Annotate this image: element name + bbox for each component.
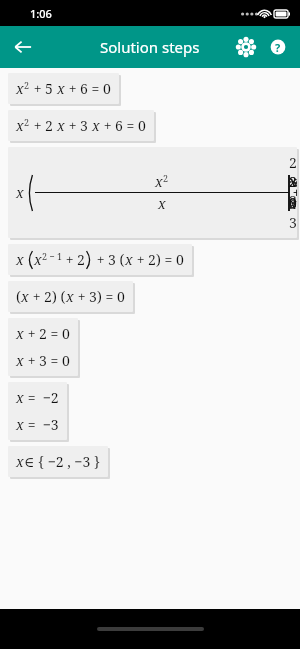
- staticText: ∈ { −2 , −3 }: [24, 452, 100, 471]
- staticText: x: [16, 388, 24, 407]
- button[interactable]: (: [8, 281, 133, 312]
- staticText: ?: [275, 40, 281, 55]
- button[interactable]: x: [8, 147, 297, 238]
- staticText: + 3 (: [93, 250, 125, 269]
- button[interactable]: x: [8, 318, 78, 376]
- staticText: x: [16, 415, 24, 434]
- staticText: x: [66, 287, 74, 306]
- staticText: 2 − 1: [42, 250, 62, 262]
- staticText: x: [16, 250, 24, 269]
- staticText: x: [155, 172, 163, 191]
- staticText: x: [16, 351, 24, 370]
- staticText: x: [158, 194, 166, 213]
- staticText: = −3: [24, 415, 59, 434]
- staticText: x: [34, 250, 42, 269]
- button[interactable]: x: [8, 110, 154, 141]
- staticText: x: [125, 250, 133, 269]
- staticText: x: [57, 79, 65, 98]
- staticText: 2: [24, 116, 30, 128]
- staticText: + 6 = 0: [65, 79, 111, 98]
- staticText: x: [16, 116, 24, 135]
- staticText: + 6 = 0: [100, 116, 146, 135]
- staticText: + 2: [62, 250, 85, 269]
- button[interactable]: x: [8, 446, 108, 477]
- staticText: (: [16, 287, 21, 306]
- staticText: x: [16, 324, 24, 343]
- staticText: = −2: [24, 388, 59, 407]
- button[interactable]: x: [8, 382, 67, 440]
- staticText: + 2: [30, 116, 57, 135]
- staticText: x: [92, 116, 100, 135]
- staticText: x: [16, 452, 24, 471]
- staticText: + 3: [65, 116, 92, 135]
- staticText: x: [21, 287, 29, 306]
- staticText: + 2) (: [29, 287, 66, 306]
- staticText: + 2) = 0: [133, 250, 184, 269]
- staticText: + 5: [30, 79, 57, 98]
- staticText: Solution steps: [100, 37, 200, 57]
- staticText: 2: [24, 79, 30, 91]
- staticText: x: [57, 116, 65, 135]
- staticText: + 3) = 0: [74, 287, 125, 306]
- button[interactable]: Help: [262, 31, 294, 63]
- button[interactable]: Back: [6, 30, 40, 64]
- staticText: + 3 = 0: [24, 351, 70, 370]
- staticText: x: [16, 79, 24, 98]
- staticText: x: [16, 183, 24, 202]
- staticText: 1:06: [30, 6, 52, 21]
- button[interactable]: Settings: [230, 31, 262, 63]
- button[interactable]: x: [8, 244, 192, 275]
- staticText: 2: [163, 172, 169, 184]
- button[interactable]: x: [8, 73, 119, 104]
- staticText: + 2 = 0: [24, 324, 70, 343]
